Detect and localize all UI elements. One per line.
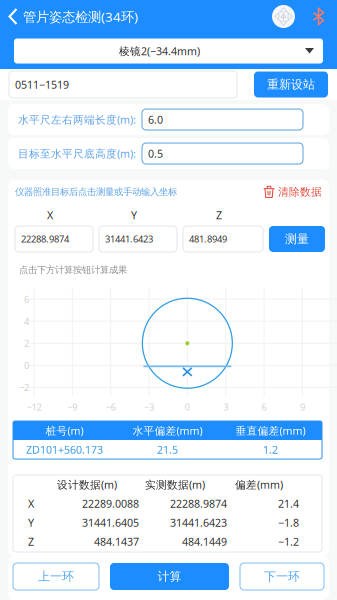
staticText: −9 (67, 401, 77, 413)
staticText: Z (28, 534, 34, 549)
staticText: 6.0 (148, 112, 163, 127)
button[interactable]: 重新设站 (254, 71, 328, 97)
staticText: 上一环 (38, 569, 74, 584)
staticText: −1.2 (278, 534, 299, 549)
staticText: 桩号(m) (45, 423, 83, 438)
staticText: 481.8949 (189, 233, 227, 245)
staticText: 6 (261, 401, 266, 413)
staticText: 重新设站 (267, 77, 315, 92)
staticText: 1.2 (263, 442, 278, 457)
staticText: 31441.6405 (82, 515, 139, 530)
staticText: 棱镜2(−34.4mm) (119, 44, 200, 58)
staticText: 点击下方计算按钮计算成果 (19, 264, 127, 276)
staticText: 计算 (157, 569, 181, 584)
staticText: 22289.0088 (82, 496, 139, 511)
staticText: 清除数据 (278, 185, 322, 198)
staticText: 6 (24, 293, 29, 305)
button[interactable]: 清除数据 (263, 185, 322, 199)
button[interactable]: 测量 (269, 226, 325, 252)
staticText: X (47, 208, 53, 222)
staticText: Y (131, 208, 137, 222)
staticText: 目标至水平尺底高度(m): (18, 146, 136, 161)
button[interactable]: 下一环 (240, 563, 324, 590)
staticText: 0511−1519 (15, 77, 69, 92)
staticText: 31441.6423 (105, 233, 153, 245)
staticText: 测量 (285, 232, 309, 246)
staticText: 2 (24, 337, 29, 349)
staticText: 偏差(mm) (235, 477, 283, 492)
staticText: −3 (144, 401, 154, 413)
staticText: 设计数据(m) (57, 477, 117, 492)
staticText: 31441.6423 (170, 515, 227, 530)
button[interactable]: 上一环 (13, 563, 99, 590)
staticText: 0.5 (148, 146, 163, 161)
staticText: 484.1437 (94, 534, 139, 549)
staticText: X (28, 496, 34, 511)
staticText: 实测数据(m) (145, 477, 205, 492)
staticText: Y (28, 515, 34, 530)
staticText: 管片姿态检测(34环) (23, 8, 138, 25)
staticText: 水平尺左右两端长度(m): (18, 112, 136, 127)
staticText: 22288.9874 (170, 496, 227, 511)
staticText: 0 (185, 401, 190, 413)
staticText: −2 (19, 381, 29, 394)
staticText: 0 (24, 359, 29, 372)
staticText: 水平偏差(mm) (132, 423, 202, 438)
staticText: 仪器照准目标后点击测量或手动输入坐标 (15, 186, 177, 198)
staticText: 4 (24, 315, 29, 327)
button[interactable]: 棱镜2(−34.4mm) (0, 33, 337, 69)
staticText: −6 (106, 401, 116, 413)
staticText: −12 (26, 401, 41, 413)
staticText: ZD101+560.173 (26, 442, 103, 457)
staticText: 9 (300, 401, 305, 413)
staticText: 垂直偏差(mm) (235, 423, 305, 438)
staticText: −1.8 (278, 515, 299, 530)
staticText: 下一环 (264, 569, 300, 584)
staticText: 21.5 (157, 442, 178, 457)
button[interactable]: Instrument controls (272, 5, 295, 28)
staticText: Z (216, 208, 222, 222)
staticText: 484.1449 (182, 534, 227, 549)
staticText: 22288.9874 (21, 233, 69, 245)
staticText: 3 (223, 401, 228, 413)
button[interactable]: Back (0, 7, 23, 25)
button[interactable]: Bluetooth (312, 7, 325, 25)
button[interactable]: 计算 (110, 563, 229, 590)
staticText: 21.4 (278, 496, 299, 511)
